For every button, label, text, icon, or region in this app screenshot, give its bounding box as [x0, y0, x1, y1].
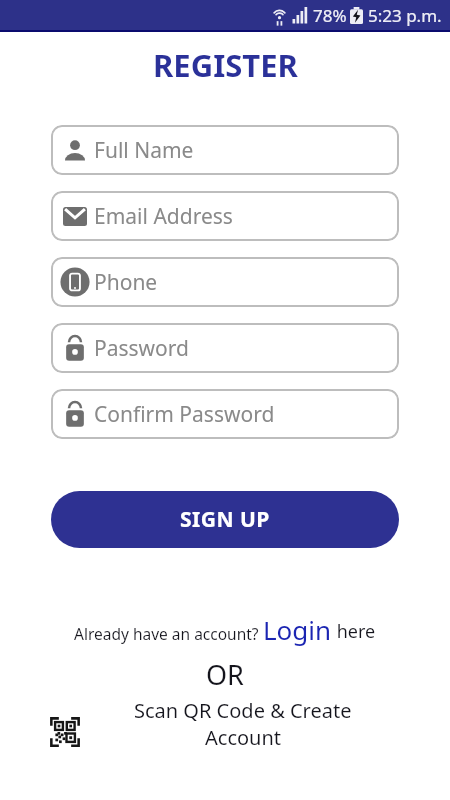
staticText: Email Address [94, 202, 233, 231]
button[interactable]: Full Name [51, 125, 399, 175]
staticText: Password [94, 334, 189, 363]
staticText: Full Name [94, 136, 194, 165]
button[interactable]: Password [51, 323, 399, 373]
staticText: 5:23 p.m. [368, 4, 442, 27]
staticText: Confirm Password [94, 400, 275, 429]
staticText: here [332, 619, 376, 644]
button[interactable]: SIGN UP [51, 491, 399, 548]
button[interactable]: Phone [51, 257, 399, 307]
staticText: 78% [313, 4, 347, 27]
staticText: Already have an account? [74, 623, 263, 644]
staticText: Phone [94, 268, 158, 297]
button[interactable]: Login [263, 612, 332, 647]
staticText: OR [206, 656, 244, 693]
staticText: Account [205, 724, 282, 751]
staticText: REGISTER [153, 44, 298, 86]
button[interactable]: Email Address [51, 191, 399, 241]
button[interactable]: Scan QR Code & Create [0, 700, 450, 800]
staticText: SIGN UP [180, 505, 270, 534]
button[interactable]: Confirm Password [51, 389, 399, 439]
staticText: Scan QR Code & Create [134, 697, 352, 724]
